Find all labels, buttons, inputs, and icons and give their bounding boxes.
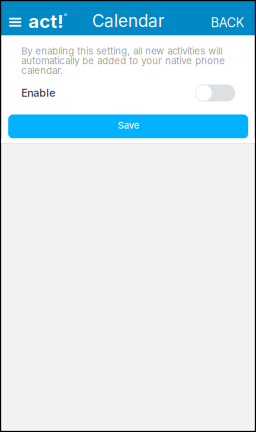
staticText: ®	[64, 12, 68, 18]
button[interactable]: Enable calendar sync	[195, 84, 235, 101]
staticText: Enable	[21, 86, 55, 99]
staticText: BACK	[211, 15, 245, 30]
staticText: Calendar	[92, 10, 164, 31]
button[interactable]: Save	[8, 114, 248, 138]
button[interactable]: Menu	[9, 1, 29, 35]
button[interactable]: BACK	[211, 1, 255, 35]
staticText: By enabling this setting, all new activi…	[21, 46, 225, 75]
staticText: act!	[28, 10, 63, 32]
button[interactable]: Act!	[29, 1, 69, 35]
staticText: Save	[118, 120, 139, 131]
